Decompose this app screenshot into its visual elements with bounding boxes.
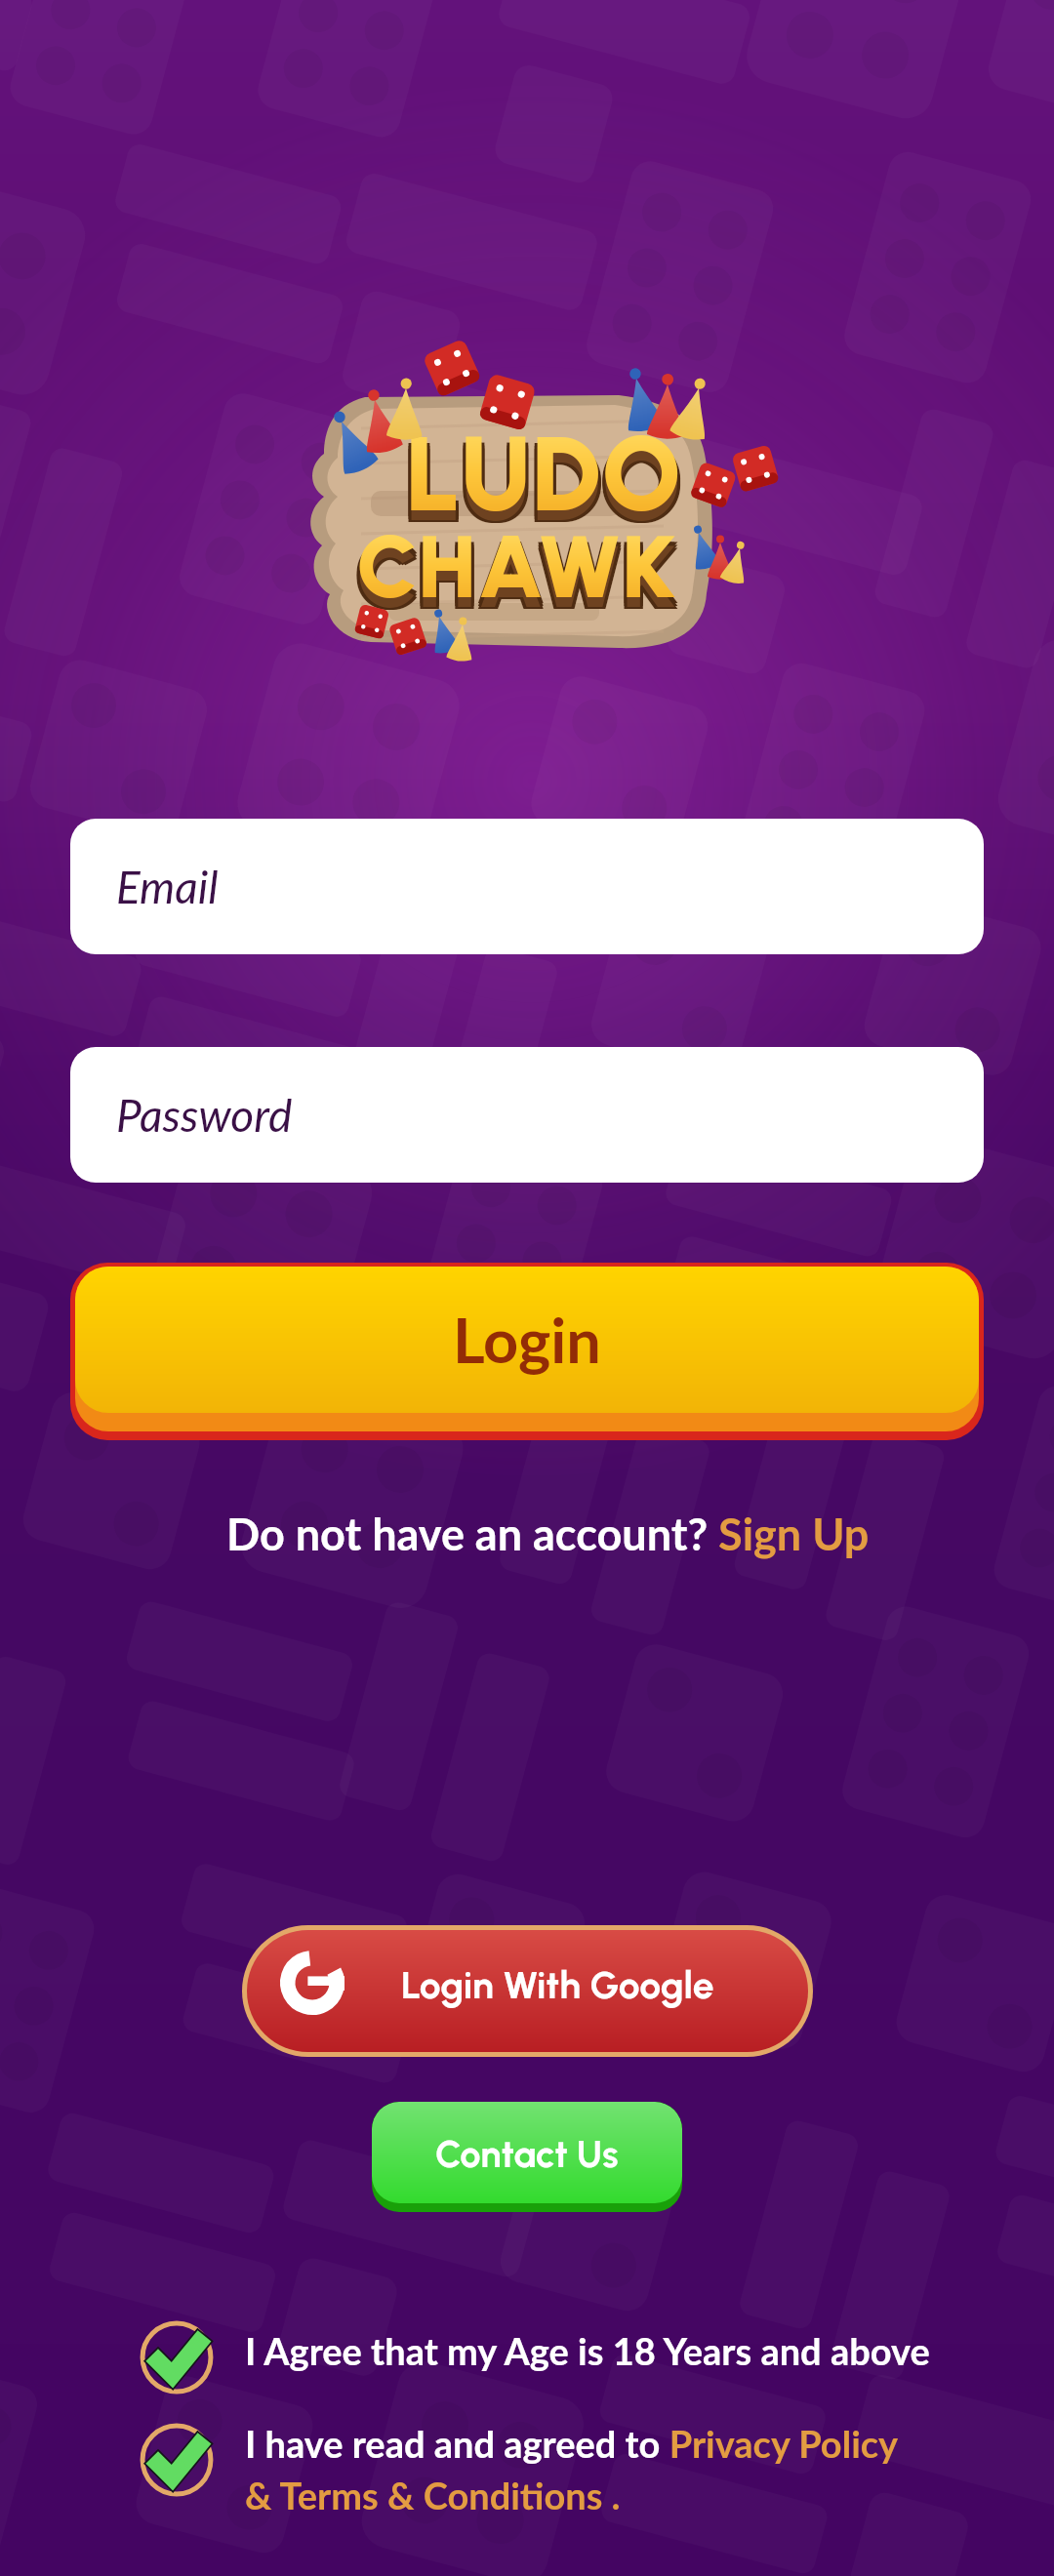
- button[interactable]: Do not have an account? Sign Up: [217, 1502, 879, 1566]
- button[interactable]: Password: [70, 1047, 984, 1183]
- staticText: Contact Us: [435, 2132, 619, 2177]
- staticText: LUDO: [405, 411, 683, 536]
- staticText: LUDO: [402, 423, 680, 547]
- staticText: I Agree that my Age is 18 Years and abov…: [245, 2328, 930, 2373]
- staticText: Email: [116, 860, 219, 913]
- staticText: LUDO: [405, 420, 683, 544]
- staticText: Do not have an account? Sign Up: [226, 1508, 870, 1560]
- button[interactable]: Contact Us: [372, 2102, 682, 2212]
- staticText: CHAWK: [359, 519, 680, 624]
- staticText: CHAWK: [359, 525, 680, 630]
- button[interactable]: I Agree that my Age is 18 Years and abov…: [140, 2320, 930, 2395]
- button[interactable]: Login: [70, 1263, 984, 1440]
- staticText: I have read and agreed to Privacy Policy…: [245, 2421, 918, 2517]
- staticText: CHAWK: [356, 519, 677, 624]
- staticText: LUDO: [402, 420, 680, 544]
- staticText: LUDO: [408, 420, 686, 544]
- staticText: Login With Google: [401, 1962, 714, 2008]
- staticText: LUDO: [402, 417, 680, 542]
- staticText: LUDO: [405, 417, 683, 542]
- staticText: CHAWK: [359, 522, 680, 627]
- staticText: CHAWK: [356, 523, 677, 628]
- staticText: CHAWK: [353, 525, 674, 630]
- staticText: CHAWK: [356, 525, 677, 630]
- other: Google: [280, 1951, 345, 2015]
- staticText: Password: [116, 1088, 293, 1142]
- staticText: LUDO: [405, 423, 683, 547]
- staticText: LUDO: [408, 423, 686, 547]
- staticText: CHAWK: [356, 522, 677, 627]
- staticText: Login: [453, 1303, 601, 1377]
- staticText: CHAWK: [356, 513, 677, 619]
- button[interactable]: I have read and agreed to Privacy Policy…: [140, 2423, 918, 2519]
- staticText: CHAWK: [353, 519, 674, 624]
- staticText: LUDO: [405, 421, 683, 545]
- button[interactable]: Email: [70, 819, 984, 954]
- staticText: LUDO: [408, 417, 686, 542]
- button[interactable]: Google: [247, 1930, 808, 2052]
- staticText: CHAWK: [353, 522, 674, 627]
